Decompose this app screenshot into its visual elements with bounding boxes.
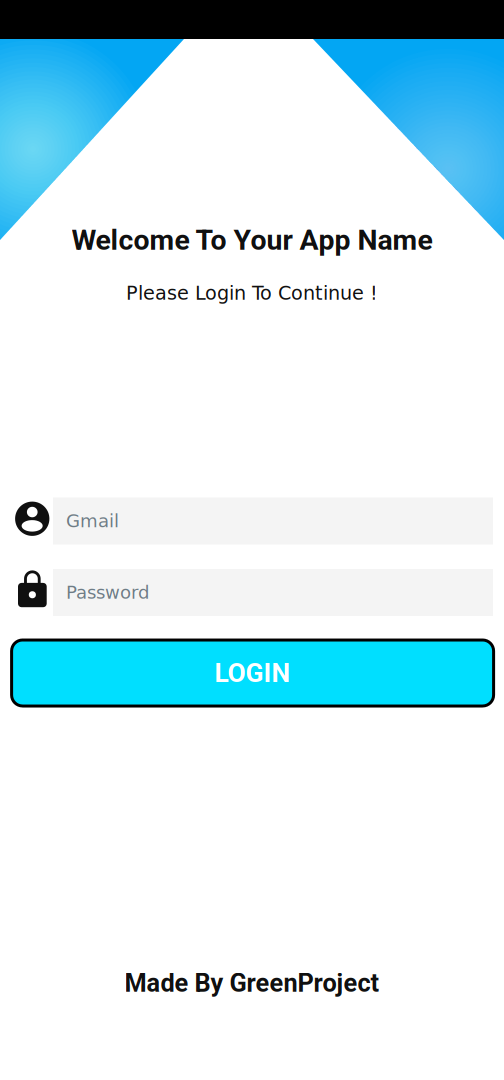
button[interactable]: LOGIN [12, 640, 494, 706]
staticText: Made By GreenProject [124, 968, 379, 998]
staticText: Please Login To Continue ! [126, 282, 378, 304]
staticText: LOGIN [215, 657, 291, 688]
button[interactable]: Gmail [0, 497, 504, 544]
staticText: Password [66, 582, 150, 603]
staticText: Gmail [66, 510, 119, 531]
staticText: Welcome To Your App Name [71, 223, 432, 257]
button[interactable]: Password [0, 569, 504, 616]
